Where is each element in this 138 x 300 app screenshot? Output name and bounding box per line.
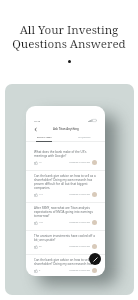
button[interactable]: After SBNY, now what are Titan analysts [26, 203, 105, 231]
staticText: Answered 2 hours ago [69, 193, 91, 196]
staticText: What does the bank make of the US's [34, 150, 87, 154]
staticText: Can the bank give advice on how to sell … [34, 258, 96, 262]
staticText: Answered 2 hours ago [69, 161, 91, 164]
staticText: tomorrow? [34, 214, 50, 218]
staticText: shareholder? Doing my own research has [34, 262, 93, 266]
staticText: meetings with Google? [34, 154, 67, 158]
staticText: expectations of NVDA going into earnings [34, 210, 93, 214]
button[interactable]: Back [32, 126, 38, 132]
button[interactable]: Can the bank give advice on how to sell … [26, 255, 105, 276]
staticText: After SBNY, now what are Titan analysts [34, 206, 90, 210]
button[interactable]: Ask a question [89, 253, 101, 265]
staticText: The uranium investments have cooled off … [34, 234, 95, 238]
staticText: 12 [39, 161, 42, 164]
staticText: Answered 2 hours ago [69, 269, 91, 272]
button[interactable]: The uranium investments have cooled off … [26, 231, 105, 255]
staticText: All Your Investing Questions Answered [12, 22, 126, 51]
staticText: proven difficult for all but that bigges… [34, 182, 88, 186]
button[interactable]: Recently Added [37, 136, 52, 139]
button[interactable]: My Questions [78, 136, 91, 139]
staticText: bit; are upside? [34, 238, 56, 242]
button[interactable]: What does the bank make of the US's [26, 147, 105, 171]
staticText: Answered 2 hours ago [69, 245, 91, 248]
staticText: 8 [39, 269, 41, 272]
staticText: 134 [39, 221, 43, 224]
staticText: 112 [39, 193, 43, 196]
staticText: Ask Titan Anything [53, 127, 79, 131]
staticText: 90 [39, 245, 42, 248]
staticText: 10:10 [34, 119, 41, 122]
staticText: Can the bank give advice on how to sell … [34, 174, 96, 178]
staticText: Answered 2 hours ago [69, 221, 91, 224]
staticText: shareholder? Doing my own research has [34, 178, 93, 182]
staticText: companies. [34, 186, 51, 190]
button[interactable]: Can the bank give advice on how to sell … [26, 171, 105, 203]
